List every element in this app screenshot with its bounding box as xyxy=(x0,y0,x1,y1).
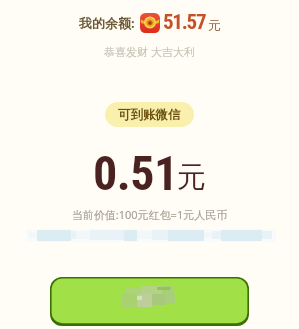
staticText: 可到账微信 xyxy=(118,107,181,123)
staticText: 恭喜发财 大吉大利 xyxy=(0,44,299,59)
staticText: 51.57 xyxy=(163,10,206,34)
staticText: 当前价值:100元红包=1元人民币 xyxy=(0,207,299,222)
staticText: 元 xyxy=(208,17,221,33)
staticText: 元 xyxy=(177,159,206,196)
button[interactable]: Confirm xyxy=(50,277,249,326)
staticText: 0.51 xyxy=(93,145,178,201)
button[interactable]: 可到账微信 xyxy=(105,102,194,127)
staticText: 我的余额: xyxy=(79,14,135,32)
